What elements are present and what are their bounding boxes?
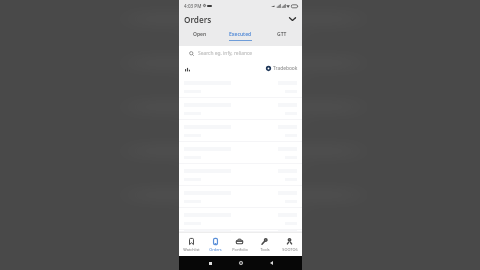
staticText: Portfolio: [232, 247, 248, 252]
button[interactable]: Tools: [252, 233, 277, 256]
staticText: Tradebook: [273, 65, 298, 72]
button[interactable]: Portfolio: [227, 233, 252, 256]
button[interactable]: Orders: [203, 233, 227, 256]
staticText: Open: [193, 31, 207, 38]
button[interactable]: Home: [236, 258, 246, 268]
button[interactable]: SOO7O6: [277, 233, 302, 256]
staticText: Executed: [229, 31, 252, 38]
staticText: Search eg. infy, reliance: [198, 50, 253, 57]
staticText: GTT: [277, 31, 287, 38]
staticText: Orders: [184, 14, 212, 25]
staticText: 4:03 PM: [184, 3, 202, 9]
button[interactable]: GTT: [261, 27, 302, 46]
staticText: SOO7O6: [282, 247, 298, 252]
staticText: Watchlist: [183, 247, 200, 252]
button[interactable]: Back: [266, 258, 276, 268]
button[interactable]: Expand: [287, 14, 297, 24]
button[interactable]: Filter: [184, 66, 190, 72]
button[interactable]: Watchlist: [179, 233, 203, 256]
staticText: Tools: [260, 247, 270, 252]
button[interactable]: Tradebook: [266, 65, 298, 72]
button[interactable]: Open: [179, 27, 220, 46]
button[interactable]: Recents: [205, 258, 215, 268]
staticText: Orders: [209, 247, 222, 252]
button[interactable]: Search eg. infy, reliance: [180, 48, 301, 59]
button[interactable]: Executed: [220, 27, 261, 46]
